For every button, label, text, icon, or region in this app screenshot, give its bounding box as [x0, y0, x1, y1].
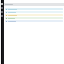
button[interactable]	[5, 11, 63, 13]
button[interactable]	[4, 3, 64, 6]
button[interactable]	[5, 14, 63, 16]
button[interactable]	[5, 8, 63, 10]
button[interactable]	[5, 17, 63, 19]
button[interactable]	[5, 20, 63, 22]
